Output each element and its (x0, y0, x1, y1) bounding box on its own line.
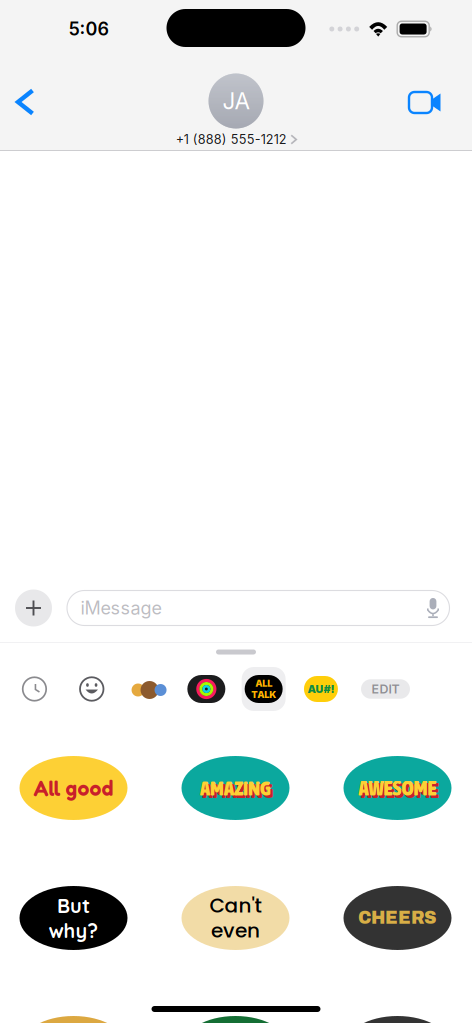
staticText: AMAZING (202, 779, 273, 802)
staticText: Can't (209, 891, 261, 919)
button[interactable]: Fitness (178, 666, 235, 712)
staticText: EDIT (371, 681, 399, 696)
staticText: But (57, 893, 90, 918)
button[interactable]: All good (19, 723, 127, 853)
button[interactable]: iMessage (67, 590, 449, 625)
button[interactable]: EDIT (361, 679, 410, 699)
staticText: AWESOME (358, 776, 436, 800)
staticText: AWESOME (361, 778, 439, 802)
button[interactable]: FaceTime video call (387, 79, 472, 126)
staticText: TALK (251, 689, 276, 700)
staticText: AMAZING (200, 776, 271, 800)
staticText: CHEERS (358, 909, 437, 927)
staticText: +1 (888) 555-1212 (176, 132, 287, 147)
button[interactable]: But why? (19, 853, 127, 983)
button[interactable]: Sticker (343, 983, 451, 1023)
button[interactable]: Amazing (181, 723, 289, 853)
button[interactable]: Awesome (343, 723, 451, 853)
staticText: why? (48, 918, 98, 943)
button[interactable]: Cheers (343, 853, 451, 983)
staticText: even (211, 916, 260, 944)
staticText: JA (222, 87, 249, 115)
button[interactable]: Back (0, 77, 54, 126)
staticText: ALL (255, 678, 272, 689)
button[interactable]: AU#! stickers (292, 666, 350, 712)
button[interactable]: Sticker (19, 983, 127, 1023)
button[interactable]: Can't even (181, 853, 289, 983)
staticText: 5:06 (68, 18, 109, 40)
button[interactable]: JA (176, 73, 296, 150)
staticText: iMessage (80, 597, 161, 619)
button[interactable]: Emoji (63, 666, 120, 712)
button[interactable]: All Talk stickers (235, 666, 292, 712)
staticText: AU#! (307, 682, 334, 695)
button[interactable]: Memoji Stickers (120, 666, 178, 712)
button[interactable]: Sticker (181, 983, 289, 1023)
button[interactable]: Recents (6, 666, 63, 712)
staticText: All good (33, 775, 113, 801)
button[interactable]: Apps (15, 589, 52, 626)
